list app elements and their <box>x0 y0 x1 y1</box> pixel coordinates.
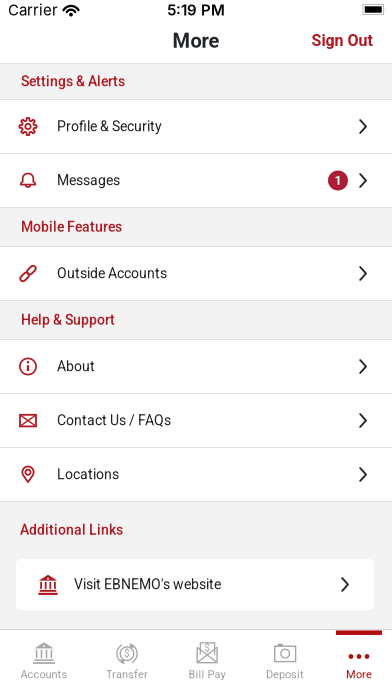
button[interactable]: Contact Us / FAQs <box>0 394 392 447</box>
staticText: $ <box>124 648 130 659</box>
staticText: Carrier <box>8 1 58 19</box>
staticText: 1 <box>334 173 341 188</box>
button[interactable]: Outside Accounts <box>0 247 392 300</box>
button[interactable]: Visit EBNEMO's website <box>16 559 374 610</box>
staticText: Bill Pay <box>188 668 225 681</box>
button[interactable]: Messages <box>0 154 392 207</box>
staticText: Help & Support <box>21 312 115 328</box>
staticText: Sign Out <box>311 31 372 50</box>
staticText: About <box>57 358 95 375</box>
staticText: 5:19 PM <box>167 1 225 19</box>
staticText: Contact Us / FAQs <box>57 412 171 429</box>
button[interactable]: $ <box>169 630 245 696</box>
button[interactable]: Accounts <box>6 630 82 696</box>
button[interactable]: About <box>0 340 392 393</box>
staticText: Profile & Security <box>57 118 162 135</box>
button[interactable]: Locations <box>0 448 392 501</box>
button[interactable]: Profile & Security <box>0 100 392 153</box>
button[interactable]: Deposit <box>247 630 323 696</box>
staticText: Mobile Features <box>21 219 122 235</box>
staticText: Settings & Alerts <box>21 73 125 90</box>
staticText: Deposit <box>266 668 304 681</box>
staticText: Messages <box>57 172 120 189</box>
staticText: Transfer <box>106 668 148 681</box>
button[interactable]: Sign Out <box>311 31 372 50</box>
staticText: More <box>346 668 372 681</box>
staticText: Locations <box>57 466 119 483</box>
button[interactable]: $ <box>89 630 165 696</box>
button[interactable]: More <box>321 630 392 696</box>
staticText: Accounts <box>20 668 67 681</box>
staticText: Additional Links <box>20 522 123 538</box>
staticText: Outside Accounts <box>57 265 167 282</box>
staticText: $ <box>204 642 210 654</box>
staticText: More <box>172 29 219 53</box>
staticText: Visit EBNEMO's website <box>74 576 221 593</box>
